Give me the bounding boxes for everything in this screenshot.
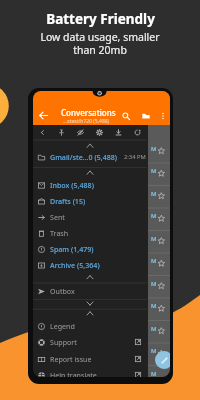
- staticText: M: [151, 190, 157, 198]
- button[interactable]: Trash: [33, 227, 147, 239]
- button[interactable]: Archive (5,364): [33, 259, 147, 271]
- staticText: Gmail/ste...0 (5,488): [50, 152, 118, 162]
- staticText: Low data usage, smaller than 20mb: [40, 30, 160, 57]
- staticText: Help translate: [50, 370, 97, 377]
- button[interactable]: Sent: [33, 211, 147, 223]
- button[interactable]: Back: [33, 125, 52, 140]
- staticText: Legend: [50, 321, 75, 331]
- button[interactable]: Hide: [71, 125, 90, 140]
- button[interactable]: Download: [109, 125, 128, 140]
- staticText: Spam (1,479): [50, 244, 94, 254]
- button[interactable]: More options: [156, 109, 169, 122]
- staticText: Drafts (15): [50, 196, 86, 206]
- button[interactable]: Refresh: [128, 125, 147, 140]
- staticText: ...xtest/h720 (5,488): [63, 118, 110, 125]
- staticText: Archive (5,364): [50, 260, 100, 270]
- staticText: Conversations: [61, 107, 116, 118]
- button[interactable]: Back: [36, 108, 50, 122]
- staticText: M: [151, 325, 157, 333]
- button[interactable]: Outbox: [33, 285, 147, 297]
- button[interactable]: Legend: [33, 320, 147, 332]
- staticText: Inbox (5,488): [50, 180, 94, 190]
- button[interactable]: Help translate: [33, 369, 147, 377]
- button[interactable]: Search: [119, 109, 132, 122]
- staticText: 2:34 PM: [124, 153, 146, 161]
- button[interactable]: Drafts (15): [33, 195, 147, 207]
- staticText: Outbox: [50, 286, 75, 296]
- button[interactable]: Report issue: [33, 353, 147, 365]
- staticText: Report issue: [50, 354, 92, 364]
- staticText: Sent: [50, 212, 65, 222]
- button[interactable]: Gmail/ste...0 (5,488): [33, 151, 147, 163]
- button[interactable]: Spam (1,479): [33, 243, 147, 255]
- staticText: M: [151, 212, 157, 220]
- staticText: Support: [50, 337, 77, 347]
- staticText: M: [151, 302, 157, 310]
- button[interactable]: Compose message: [155, 351, 170, 369]
- staticText: M: [151, 167, 157, 175]
- staticText: M: [151, 347, 157, 355]
- staticText: M: [151, 235, 157, 243]
- button[interactable]: Support: [33, 336, 147, 348]
- staticText: M: [151, 257, 157, 265]
- staticText: Battery Friendly: [46, 10, 155, 28]
- staticText: Trash: [50, 228, 69, 238]
- button[interactable]: Inbox (5,488): [33, 179, 147, 191]
- staticText: M: [151, 280, 157, 288]
- staticText: M: [151, 370, 157, 377]
- staticText: M: [151, 145, 157, 153]
- button[interactable]: Pin: [52, 125, 71, 140]
- button[interactable]: Settings: [90, 125, 109, 140]
- button[interactable]: Folders: [139, 109, 152, 122]
